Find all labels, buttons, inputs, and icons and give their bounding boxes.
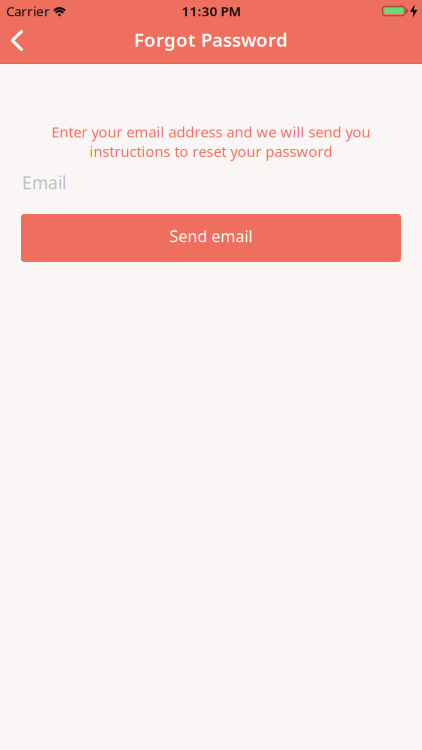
staticText: Forgot Password <box>134 27 288 52</box>
button[interactable]: Send email <box>21 214 401 262</box>
button[interactable]: Email <box>0 171 422 194</box>
staticText: Enter your email address and we will sen… <box>51 122 370 141</box>
staticText: instructions to reset your password <box>89 141 332 161</box>
staticText: Carrier <box>6 2 50 20</box>
staticText: Email <box>22 171 66 194</box>
staticText: 11:30 PM <box>181 2 240 20</box>
staticText: Send email <box>169 225 252 246</box>
button[interactable]: Back <box>0 23 23 62</box>
